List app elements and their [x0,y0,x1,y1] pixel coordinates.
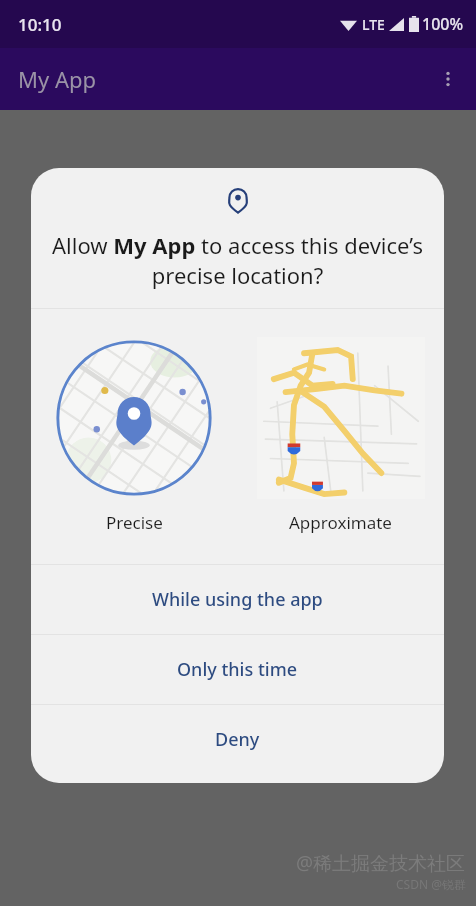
staticText: @稀土掘金技术社区 [296,850,466,876]
button[interactable]: More options [428,59,468,99]
button[interactable]: Precise [31,309,237,564]
staticText: Allow My App to access this device’s pre… [51,230,424,290]
button[interactable]: Deny [31,705,444,774]
staticText: 10:10 [18,13,62,36]
staticText: While using the app [152,587,323,612]
staticText: Deny [215,727,260,752]
button[interactable]: Only this time [31,635,444,704]
staticText: 100% [422,13,464,35]
staticText: Approximate [289,511,392,534]
staticText: My App [18,64,97,94]
staticText: Only this time [177,657,298,682]
staticText: CSDN @锐群 [396,876,466,892]
button[interactable]: While using the app [31,565,444,634]
staticText: Precise [106,511,163,534]
button[interactable]: Approximate [237,309,444,564]
staticText: LTE [362,15,385,34]
